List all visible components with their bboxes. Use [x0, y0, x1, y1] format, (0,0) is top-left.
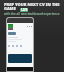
button[interactable]: LIVE [20, 8, 28, 12]
staticText: with the all new dashboard experience [4, 12, 60, 16]
button[interactable] [8, 54, 32, 63]
button[interactable] [8, 32, 16, 35]
button[interactable]: More options [27, 26, 32, 27]
staticText: LIVE [21, 8, 28, 12]
staticText: PREP YOUR NEXT CV IN THE GAME [4, 2, 60, 11]
